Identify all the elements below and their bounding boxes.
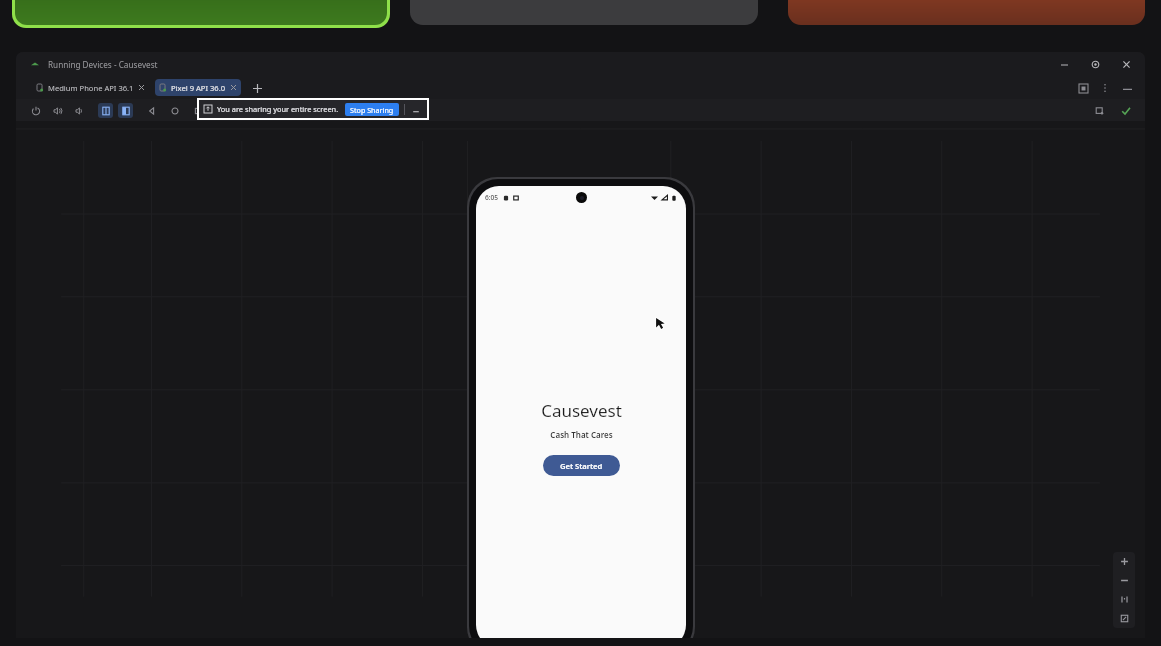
button[interactable]: Fit to screen <box>1113 609 1135 628</box>
button[interactable]: Zoom out <box>1113 571 1135 590</box>
staticText: Get Started <box>560 461 603 471</box>
staticText: You are sharing your entire screen. <box>217 104 339 114</box>
button[interactable]: Add device <box>250 81 264 95</box>
button[interactable]: Hide <box>1120 81 1134 95</box>
button[interactable]: Medium Phone API 36.1 <box>32 79 149 96</box>
button[interactable]: Record screen <box>238 103 253 118</box>
button[interactable]: Green card <box>12 0 390 28</box>
staticText: Causevest <box>541 399 622 422</box>
button[interactable]: Recents <box>190 103 205 118</box>
button[interactable]: Get Started <box>543 455 620 476</box>
staticText: Running Devices - Causevest <box>48 59 158 70</box>
button[interactable]: More options <box>1099 82 1111 94</box>
button[interactable]: Volume down <box>72 103 87 118</box>
button[interactable]: Rotate left <box>98 103 113 118</box>
button[interactable]: Stop Sharing <box>345 103 399 116</box>
button[interactable]: Minimize <box>1057 57 1071 71</box>
button[interactable]: Home <box>167 103 182 118</box>
button[interactable]: Volume up <box>50 103 65 118</box>
staticText: Cash That Cares <box>550 429 613 440</box>
staticText: 6:05 <box>485 193 499 202</box>
button[interactable]: Close <box>1119 57 1133 71</box>
button[interactable]: Power <box>28 103 43 118</box>
button[interactable]: Brown card <box>788 0 1145 25</box>
button[interactable]: Back <box>144 103 159 118</box>
button[interactable]: Layout <box>1076 81 1090 95</box>
button[interactable]: Snapshot <box>1092 103 1107 118</box>
staticText: Medium Phone API 36.1 <box>48 83 134 93</box>
button[interactable]: Collapse banner <box>410 103 422 116</box>
button[interactable]: Rotate right <box>118 103 133 118</box>
staticText: Stop Sharing <box>350 105 394 115</box>
button[interactable]: Pixel 9 API 36.0 <box>155 79 241 96</box>
button[interactable]: Maximize <box>1088 57 1102 71</box>
staticText: Pixel 9 API 36.0 <box>171 83 226 93</box>
button[interactable]: Screenshot <box>216 103 231 118</box>
button[interactable]: Grey card <box>410 0 758 25</box>
button[interactable]: Zoom in <box>1113 552 1135 571</box>
button[interactable]: Actual size <box>1113 590 1135 609</box>
button[interactable]: Accept <box>1119 104 1133 118</box>
